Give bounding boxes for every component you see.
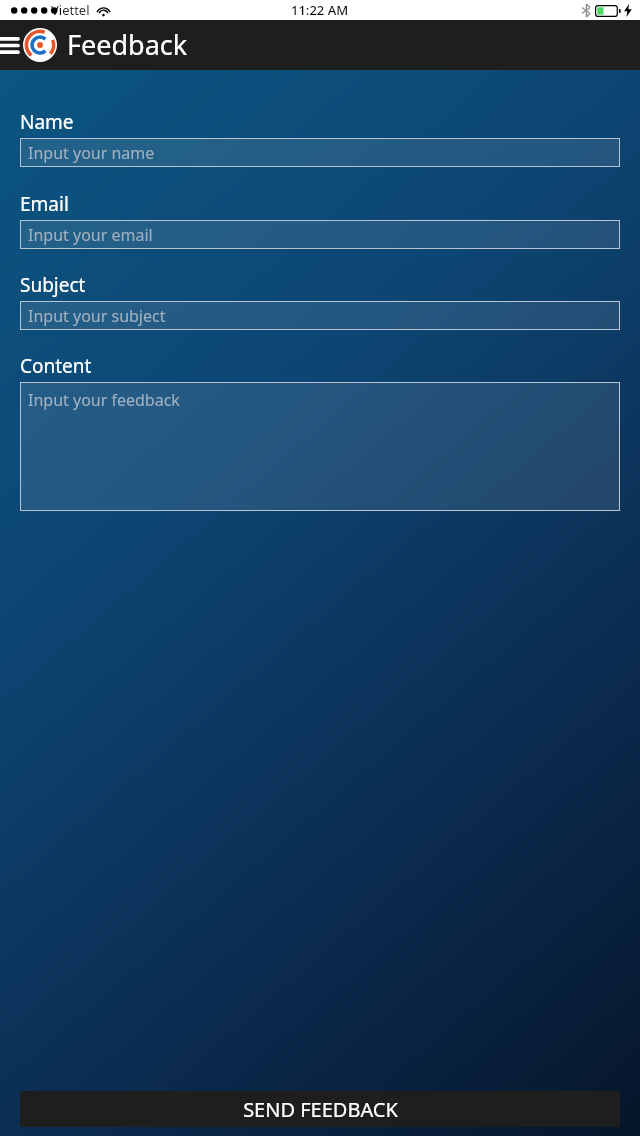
staticText: Input your subject [28,305,166,327]
staticText: Subject [20,272,86,298]
staticText: Viettel [51,1,90,19]
button[interactable]: Input your feedback [20,382,620,511]
button[interactable]: Input your subject [20,301,620,330]
button[interactable]: SEND FEEDBACK [20,1091,620,1127]
staticText: Email [20,191,69,217]
button[interactable]: Input your email [20,220,620,249]
staticText: SEND FEEDBACK [243,1096,398,1123]
button[interactable]: Open navigation menu [0,20,22,70]
button[interactable]: Input your name [20,138,620,167]
staticText: 11:22 AM [291,1,349,19]
staticText: Input your name [28,142,155,164]
staticText: Name [20,109,74,135]
staticText: Input your email [28,224,153,246]
staticText: Feedback [67,26,188,63]
staticText: Input your feedback [28,389,180,411]
staticText: Content [20,353,92,379]
